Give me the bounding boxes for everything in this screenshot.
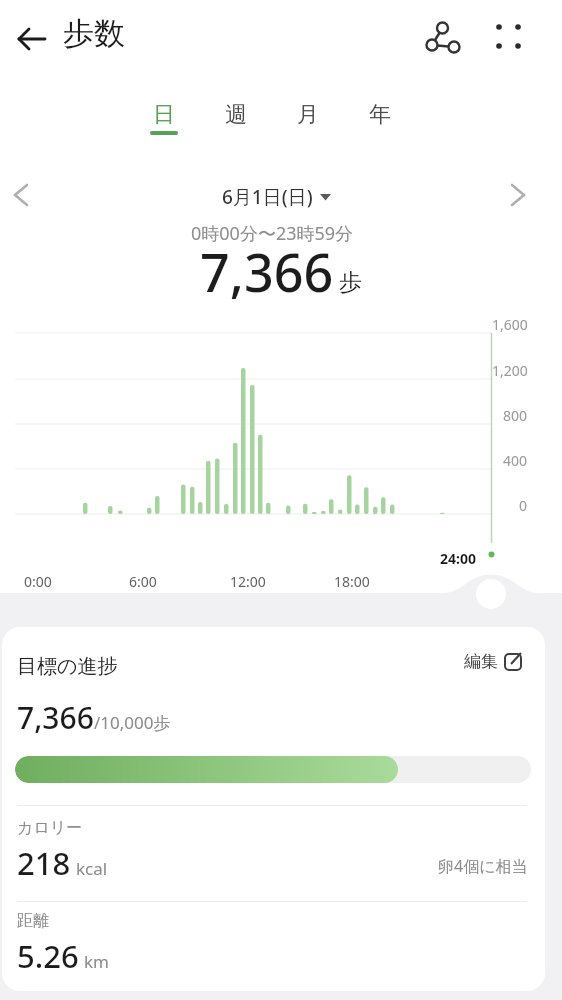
staticText: カロリー [17, 818, 83, 838]
button[interactable]: 年 [350, 98, 410, 132]
staticText: 年 [369, 101, 391, 129]
button[interactable]: 日 [134, 98, 194, 132]
staticText: 800 [503, 406, 528, 425]
staticText: 12:00 [230, 572, 266, 591]
staticText: 歩数 [63, 14, 125, 53]
staticText: 目標の進捗 [17, 654, 118, 679]
staticText: 400 [503, 451, 528, 470]
staticText: 18:00 [334, 572, 370, 591]
button[interactable] [14, 22, 50, 58]
staticText: 6:00 [129, 572, 157, 591]
button[interactable]: 6月1日(日) [222, 184, 331, 210]
staticText: 0:00 [24, 572, 52, 591]
staticText: 1,600 [492, 315, 528, 334]
button[interactable] [500, 180, 528, 208]
staticText: 6月1日(日) [222, 184, 313, 210]
button[interactable]: 月 [278, 98, 338, 132]
staticText: 218 [17, 842, 71, 884]
staticText: 編集 [464, 651, 498, 672]
button[interactable]: 週 [206, 98, 266, 132]
button[interactable] [8, 180, 36, 208]
staticText: 0 [519, 496, 528, 515]
staticText: 月 [297, 101, 319, 129]
staticText: 0時00分〜23時59分 [191, 221, 354, 246]
staticText: 7,366 [17, 697, 94, 738]
button[interactable] [416, 16, 464, 64]
staticText: 5.26 [17, 935, 79, 977]
staticText: 距離 [17, 911, 49, 931]
staticText: 1,200 [492, 361, 528, 380]
staticText: km [84, 950, 109, 973]
staticText: /10,000歩 [94, 711, 171, 734]
staticText: 卵4個に相当 [438, 855, 528, 877]
staticText: 日 [153, 101, 175, 129]
staticText: 24:00 [440, 549, 476, 568]
staticText: 7,366 [200, 236, 334, 307]
staticText: kcal [76, 857, 108, 880]
staticText: 週 [225, 101, 247, 129]
button[interactable]: 編集 [464, 651, 523, 672]
button[interactable] [489, 17, 529, 57]
staticText: 歩 [339, 268, 362, 297]
